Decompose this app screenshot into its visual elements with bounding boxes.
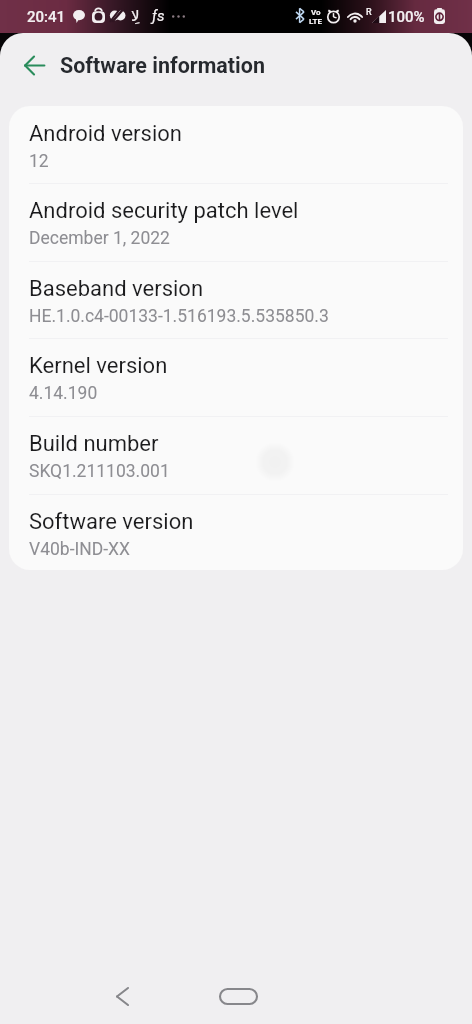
button[interactable]: Kernel version: [9, 338, 463, 416]
staticText: V40b-IND-XX: [29, 539, 130, 560]
button[interactable]: Android version: [9, 106, 463, 183]
staticText: SKQ1.211103.001: [29, 461, 170, 482]
button[interactable]: Back: [100, 976, 144, 1016]
staticText: Software version: [29, 509, 194, 535]
staticText: Vo: [311, 8, 321, 17]
staticText: Software information: [60, 53, 265, 78]
button[interactable]: Software version: [9, 494, 463, 570]
staticText: Android version: [29, 121, 182, 147]
staticText: 12: [29, 151, 49, 172]
staticText: ƒs: [152, 7, 165, 25]
staticText: December 1, 2022: [29, 228, 170, 249]
staticText: Kernel version: [29, 353, 168, 379]
staticText: HE.1.0.c4-00133-1.516193.5.535850.3: [29, 306, 329, 327]
button[interactable]: Build number: [9, 416, 463, 494]
staticText: 100%: [388, 8, 425, 26]
staticText: LTE: [309, 17, 322, 26]
staticText: Baseband version: [29, 276, 204, 302]
staticText: لِا: [131, 7, 140, 24]
staticText: Android security patch level: [29, 198, 299, 224]
button[interactable]: Navigate up: [15, 46, 53, 84]
staticText: R: [366, 7, 372, 18]
staticText: 4.14.190: [29, 383, 98, 404]
staticText: 20:41: [27, 8, 66, 26]
staticText: Build number: [29, 431, 159, 457]
button[interactable]: Baseband version: [9, 261, 463, 338]
button[interactable]: Android security patch level: [9, 183, 463, 261]
button[interactable]: Home: [208, 976, 268, 1016]
